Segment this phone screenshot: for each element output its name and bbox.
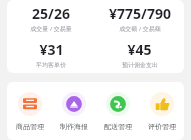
staticText: 预计佣金支出 [122,61,158,69]
staticText: 配送管理 [104,122,132,131]
staticText: 25/26 [32,4,70,23]
staticText: ¥775/790 [109,4,171,23]
staticText: 制作海报 [60,122,88,131]
staticText: 成交量 / 交易量 [30,25,72,33]
staticText: 商品管理 [16,122,44,131]
button[interactable]: ¥45 [95,36,184,73]
button[interactable]: 制作海报 [52,82,96,140]
staticText: 成交额 / 交易额 [119,25,161,33]
staticText: ¥31 [39,40,64,59]
staticText: 评价管理 [148,122,176,131]
button[interactable]: 配送管理 [96,82,140,140]
button[interactable]: 25/26 [7,0,95,36]
button[interactable]: ¥31 [7,36,95,73]
staticText: ¥45 [127,40,152,59]
button[interactable]: 评价管理 [140,82,184,140]
staticText: 平均客单价 [36,61,66,69]
button[interactable]: ¥775/790 [95,0,184,36]
button[interactable]: 商品管理 [7,82,52,140]
